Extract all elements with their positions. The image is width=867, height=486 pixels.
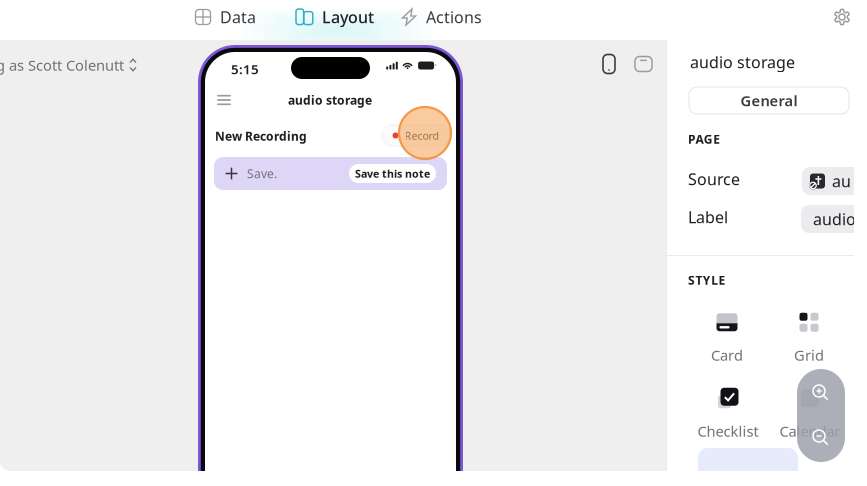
- staticText: 5:15: [231, 60, 259, 78]
- staticText: au: [832, 170, 851, 192]
- staticText: Actions: [426, 6, 482, 28]
- button[interactable]: Zoom out: [808, 425, 834, 451]
- button[interactable]: Card: [683, 310, 771, 366]
- button[interactable]: Data: [185, 0, 275, 37]
- button[interactable]: Phone preview: [602, 54, 616, 74]
- staticText: Calendar: [779, 421, 840, 441]
- button[interactable]: audio s: [801, 205, 867, 233]
- staticText: audio storage: [288, 92, 372, 108]
- staticText: Data: [220, 6, 256, 28]
- button[interactable]: Calendar: [766, 386, 854, 442]
- staticText: Save this note: [355, 166, 430, 181]
- staticText: Save.: [247, 165, 277, 181]
- button[interactable]: Grid: [765, 310, 853, 366]
- staticText: Grid: [794, 345, 824, 365]
- staticText: audio storage: [690, 51, 795, 73]
- button[interactable]: Settings: [833, 8, 850, 26]
- button[interactable]: Layout: [286, 0, 393, 37]
- button[interactable]: General: [689, 87, 849, 114]
- staticText: PAGE: [688, 131, 720, 147]
- button[interactable]: Actions: [391, 0, 501, 37]
- button[interactable]: Record: [382, 125, 450, 146]
- button[interactable]: Checklist: [684, 386, 772, 442]
- button[interactable]: Zoom in: [808, 380, 834, 406]
- button[interactable]: Save this note: [349, 164, 436, 183]
- staticText: Label: [688, 206, 728, 228]
- staticText: Source: [688, 168, 740, 190]
- staticText: New Recording: [215, 128, 307, 144]
- staticText: Record: [404, 128, 439, 143]
- staticText: Checklist: [697, 421, 758, 441]
- staticText: Layout: [322, 6, 374, 28]
- button[interactable]: Menu: [216, 94, 232, 106]
- staticText: STYLE: [688, 272, 726, 288]
- staticText: audio s: [813, 208, 867, 230]
- button[interactable]: au: [802, 167, 867, 195]
- button[interactable]: Tablet preview: [634, 56, 653, 72]
- staticText: General: [740, 91, 797, 110]
- staticText: Viewing as Scott Colenutt: [0, 55, 124, 75]
- staticText: Card: [711, 345, 743, 365]
